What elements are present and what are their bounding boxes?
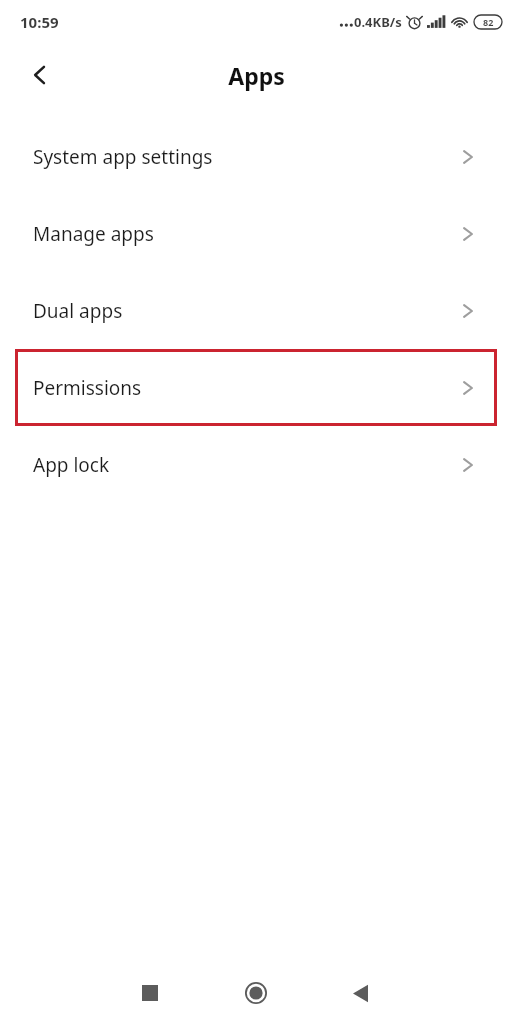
staticText: Dual apps	[33, 298, 123, 324]
staticText: Permissions	[33, 375, 142, 401]
staticText: Apps	[228, 60, 285, 91]
staticText: Manage apps	[33, 221, 154, 247]
staticText: 10:59	[20, 12, 59, 32]
staticText: App lock	[33, 452, 110, 478]
button[interactable]: Back	[330, 963, 390, 1023]
button[interactable]: Back	[14, 49, 66, 101]
button[interactable]: Recent apps	[120, 963, 180, 1023]
button[interactable]: Manage apps	[0, 195, 512, 272]
staticText: 82	[483, 16, 494, 28]
button[interactable]: Permissions	[0, 349, 512, 426]
button[interactable]: App lock	[0, 426, 512, 503]
staticText: 0.4KB/s	[354, 13, 402, 31]
button[interactable]: Home	[226, 963, 286, 1023]
button[interactable]: System app settings	[0, 118, 512, 195]
staticText: System app settings	[33, 144, 213, 170]
button[interactable]: Dual apps	[0, 272, 512, 349]
